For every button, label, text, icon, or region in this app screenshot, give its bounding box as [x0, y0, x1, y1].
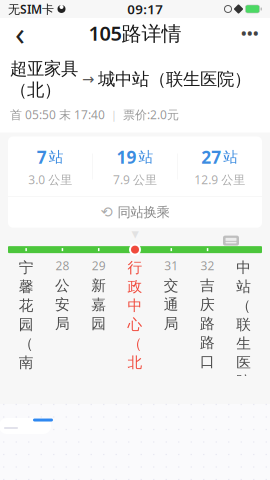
staticText: 站 — [49, 148, 64, 166]
staticText: 公 — [55, 277, 70, 295]
staticText: 29 — [92, 258, 106, 273]
staticText: 中 — [127, 297, 142, 315]
staticText: 馨 — [19, 277, 34, 295]
button[interactable]: 27 — [178, 145, 262, 187]
button[interactable]: 28 — [44, 258, 81, 376]
button[interactable]: 27 — [8, 240, 44, 394]
staticText: 政 — [127, 277, 142, 295]
staticText: 安 — [55, 296, 70, 314]
staticText: 3.0 公里 — [28, 171, 72, 187]
staticText: （ — [127, 335, 142, 353]
staticText: 票价:2.0元 — [123, 107, 179, 122]
button[interactable]: 返回 — [0, 18, 40, 48]
staticText: 路 — [200, 334, 215, 352]
staticText: 生 — [236, 335, 251, 353]
staticText: 105路详情 — [88, 20, 181, 46]
staticText: 联 — [236, 316, 251, 334]
staticText: ‹ — [15, 12, 25, 54]
staticText: 新 — [91, 277, 106, 295]
staticText: 宁 — [19, 258, 34, 276]
staticText: 30 — [128, 240, 142, 255]
staticText: 北 — [127, 354, 142, 372]
staticText: 27 — [19, 240, 33, 255]
staticText: 无SIM卡 — [8, 1, 54, 17]
staticText: 19 — [116, 145, 136, 168]
staticText: 交 — [164, 277, 179, 295]
staticText: 28 — [55, 258, 69, 273]
staticText: 同站换乘 — [117, 204, 169, 220]
staticText: 吉 — [200, 277, 215, 295]
staticText: 超亚家具（北） — [10, 58, 78, 101]
staticText: 中 — [236, 258, 251, 276]
staticText: （ — [236, 297, 251, 315]
button[interactable]: ⟲ — [8, 197, 262, 228]
staticText: 花 — [19, 297, 34, 315]
staticText: 站 — [138, 148, 153, 166]
button[interactable]: 29 — [81, 258, 117, 376]
staticText: 心 — [127, 316, 142, 334]
staticText: 园 — [91, 315, 106, 333]
staticText: 站 — [223, 148, 238, 166]
staticText: 嘉 — [91, 296, 106, 314]
button[interactable]: 更多 — [230, 18, 270, 48]
staticText: 院 — [236, 373, 251, 391]
staticText: 城 — [236, 239, 251, 257]
button[interactable]: 19 — [93, 145, 177, 187]
staticText: 12.9 公里 — [194, 171, 245, 187]
staticText: 口 — [200, 353, 215, 371]
staticText: （ — [19, 335, 34, 353]
staticText: 7.9 公里 — [113, 171, 157, 187]
staticText: 首 05:50 末 17:40 — [10, 107, 105, 122]
staticText: 27 — [201, 145, 221, 168]
staticText: ⟲ — [100, 204, 112, 221]
staticText: 南 — [19, 354, 34, 372]
staticText: | — [111, 107, 117, 122]
staticText: 09:17 — [127, 0, 163, 18]
staticText: 路 — [200, 315, 215, 333]
button[interactable]: 30 — [117, 240, 153, 394]
staticText: 园 — [19, 316, 34, 334]
staticText: 局 — [55, 315, 70, 333]
staticText: ▾ — [131, 225, 138, 242]
staticText: 通 — [164, 296, 179, 314]
staticText: 局 — [164, 315, 179, 333]
staticText: → — [82, 71, 94, 88]
staticText: 32 — [201, 258, 215, 273]
staticText: 庆 — [200, 296, 215, 314]
staticText: 31 — [164, 258, 178, 273]
button[interactable]: 32 — [189, 258, 226, 376]
button[interactable]: 7 — [8, 145, 92, 187]
staticText: 行 — [127, 258, 142, 276]
staticText: 城中站（联生医院） — [98, 69, 251, 90]
button[interactable]: 33 — [226, 221, 262, 413]
staticText: 7 — [37, 145, 47, 168]
staticText: 站 — [236, 277, 251, 295]
staticText: 医 — [236, 354, 251, 372]
staticText: 33 — [237, 221, 251, 236]
staticText: ••• — [241, 23, 259, 43]
button[interactable]: 31 — [153, 258, 189, 376]
